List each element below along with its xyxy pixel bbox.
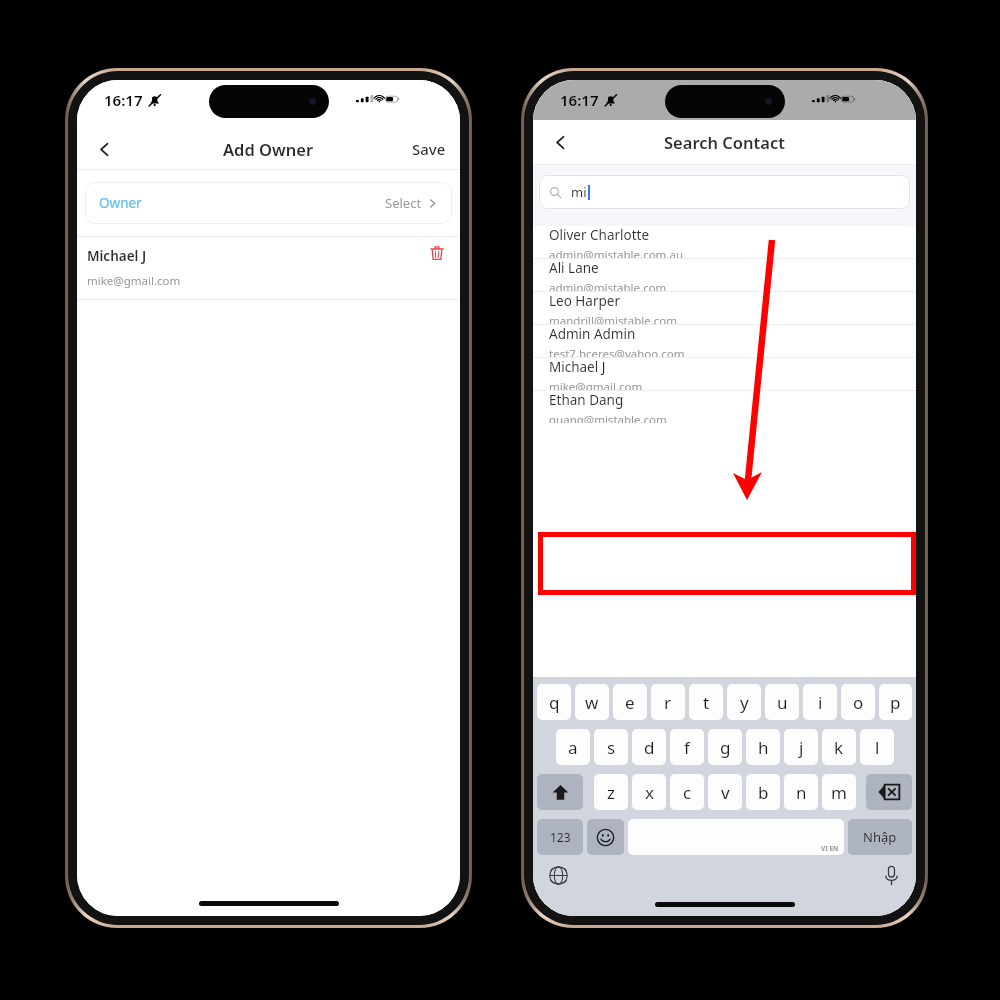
staticText: Leo Harper [549, 292, 621, 310]
button[interactable]: y [727, 684, 761, 720]
staticText: n [796, 781, 807, 804]
button[interactable]: b [746, 774, 780, 810]
button[interactable]: f [670, 729, 704, 765]
button[interactable]: r [651, 684, 685, 720]
staticText: Save [412, 139, 446, 159]
staticText: mandrill@mistable.com [549, 313, 678, 324]
staticText: p [890, 691, 901, 714]
staticText: Select [385, 194, 422, 212]
button[interactable]: w [575, 684, 609, 720]
staticText: x [645, 781, 654, 804]
staticText: 16:17 [104, 90, 143, 110]
button[interactable]: h [746, 729, 780, 765]
staticText: admin@mistable.com [549, 280, 667, 291]
button[interactable]: 123 [537, 819, 583, 855]
button[interactable]: l [860, 729, 894, 765]
button[interactable]: m [822, 774, 856, 810]
button[interactable]: j [784, 729, 818, 765]
staticText: k [834, 736, 844, 759]
staticText: q [549, 691, 560, 714]
staticText: Ali Lane [549, 259, 599, 277]
staticText: Oliver Charlotte [549, 226, 650, 244]
button[interactable]: c [670, 774, 704, 810]
button[interactable]: Nhập [848, 819, 912, 855]
staticText: z [607, 781, 615, 804]
staticText: t [703, 691, 710, 714]
button[interactable]: Michael J [77, 237, 460, 299]
staticText: f [684, 736, 690, 759]
button[interactable]: Delete owner [424, 240, 450, 266]
button[interactable]: x [632, 774, 666, 810]
button[interactable]: mi [539, 175, 910, 209]
button[interactable]: o [841, 684, 875, 720]
staticText: r [664, 691, 672, 714]
button[interactable]: Space [628, 819, 844, 855]
staticText: a [568, 736, 578, 759]
staticText: Michael J [549, 358, 606, 376]
button[interactable]: z [594, 774, 628, 810]
button[interactable]: Shift [537, 774, 583, 810]
button[interactable]: Michael J [533, 358, 916, 390]
staticText: l [875, 736, 880, 759]
button[interactable]: i [803, 684, 837, 720]
button[interactable]: n [784, 774, 818, 810]
button[interactable]: Back [87, 132, 121, 166]
button[interactable]: u [765, 684, 799, 720]
button[interactable]: Backspace [866, 774, 912, 810]
staticText: VI EN [821, 844, 839, 853]
button[interactable]: Oliver Charlotte [533, 226, 916, 258]
button[interactable]: Leo Harper [533, 292, 916, 324]
button[interactable]: k [822, 729, 856, 765]
button[interactable]: q [537, 684, 571, 720]
staticText: quang@mistable.com [549, 412, 667, 423]
button[interactable]: Ali Lane [533, 259, 916, 291]
button[interactable]: d [632, 729, 666, 765]
button[interactable]: Admin Admin [533, 325, 916, 357]
staticText: admin@mistable.com.au [549, 247, 683, 258]
staticText: s [607, 736, 616, 759]
button[interactable]: Owner [85, 182, 452, 224]
staticText: Michael J [87, 247, 147, 265]
staticText: b [758, 781, 769, 804]
button[interactable]: Back [543, 125, 577, 159]
staticText: Search Contact [664, 131, 785, 153]
staticText: o [853, 691, 864, 714]
button[interactable]: a [556, 729, 590, 765]
staticText: Nhập [863, 828, 897, 846]
button[interactable]: v [708, 774, 742, 810]
staticText: h [758, 736, 769, 759]
staticText: e [625, 691, 635, 714]
staticText: mike@gmail.com [87, 273, 181, 289]
staticText: mike@gmail.com [549, 379, 643, 390]
staticText: g [720, 736, 731, 759]
button[interactable]: Ethan Dang [533, 391, 916, 423]
staticText: Admin Admin [549, 325, 636, 343]
staticText: Owner [99, 194, 142, 212]
staticText: 123 [550, 829, 571, 845]
button[interactable]: p [879, 684, 912, 720]
staticText: v [721, 781, 730, 804]
staticText: c [683, 781, 692, 804]
button[interactable]: Change keyboard [547, 864, 569, 886]
button[interactable]: t [689, 684, 723, 720]
button[interactable]: Save [398, 133, 460, 165]
staticText: mi [571, 183, 587, 201]
button[interactable]: Dictate [880, 864, 902, 886]
staticText: w [585, 691, 599, 714]
staticText: 16:17 [560, 90, 599, 110]
staticText: m [831, 781, 847, 804]
staticText: d [644, 736, 655, 759]
staticText: u [777, 691, 788, 714]
staticText: i [818, 691, 823, 714]
button[interactable]: e [613, 684, 647, 720]
staticText: Add Owner [223, 138, 314, 160]
staticText: y [740, 691, 749, 714]
staticText: Ethan Dang [549, 391, 624, 409]
button[interactable]: Emoji [587, 819, 624, 855]
button[interactable]: g [708, 729, 742, 765]
staticText: test7.bceres@yahoo.com [549, 346, 685, 357]
staticText: j [799, 736, 804, 759]
button[interactable]: s [594, 729, 628, 765]
